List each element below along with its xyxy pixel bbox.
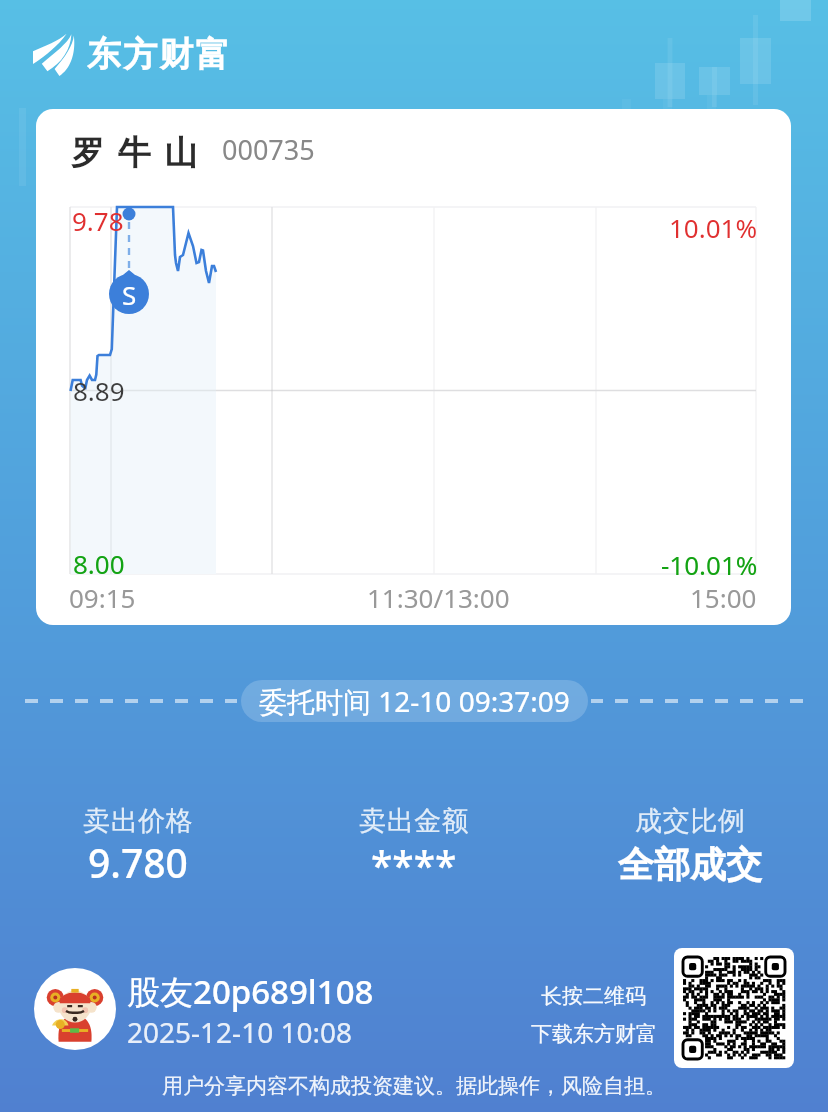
button[interactable]: 卖出价格 bbox=[0, 804, 276, 893]
staticText: 下载东方财富 bbox=[531, 1021, 657, 1047]
staticText: 8.00 bbox=[73, 546, 125, 581]
staticText: 委托时间 12-10 09:37:09 bbox=[259, 682, 570, 720]
staticText: 2025-12-10 10:08 bbox=[127, 1013, 353, 1051]
staticText: **** bbox=[371, 838, 457, 891]
staticText: 长按二维码 bbox=[541, 983, 646, 1009]
staticText: 卖出金额 bbox=[359, 804, 469, 838]
staticText: 全部成交 bbox=[618, 842, 762, 887]
staticText: 8.89 bbox=[73, 373, 125, 408]
button[interactable]: 委托时间 12-10 09:37:09 bbox=[241, 680, 588, 722]
button[interactable]: 东方财富 bbox=[28, 28, 243, 80]
staticText: 9.780 bbox=[88, 836, 188, 889]
staticText: 罗 牛 山 bbox=[71, 129, 201, 174]
staticText: 11:30/13:00 bbox=[367, 580, 510, 615]
staticText: 000735 bbox=[222, 131, 315, 168]
button[interactable]: QR code bbox=[683, 957, 785, 1059]
button[interactable]: 罗 牛 山 bbox=[36, 109, 791, 625]
staticText: -10.01% bbox=[661, 547, 758, 582]
button[interactable]: 股友20p689l108 bbox=[127, 969, 374, 1014]
button[interactable]: 长按二维码 bbox=[516, 983, 671, 1047]
button[interactable]: 卖出金额 bbox=[276, 804, 552, 893]
staticText: 09:15 bbox=[69, 580, 136, 615]
staticText: 15:00 bbox=[690, 580, 757, 615]
staticText: 9.78 bbox=[72, 203, 124, 238]
staticText: S bbox=[122, 277, 137, 312]
button[interactable]: User avatar bbox=[34, 968, 116, 1050]
staticText: 成交比例 bbox=[635, 804, 745, 838]
staticText: 10.01% bbox=[669, 210, 758, 245]
button[interactable]: 成交比例 bbox=[552, 804, 828, 885]
staticText: 用户分享内容不构成投资建议。据此操作，风险自担。 bbox=[0, 1073, 828, 1099]
staticText: 东方财富 bbox=[87, 33, 232, 76]
staticText: 卖出价格 bbox=[83, 804, 193, 838]
